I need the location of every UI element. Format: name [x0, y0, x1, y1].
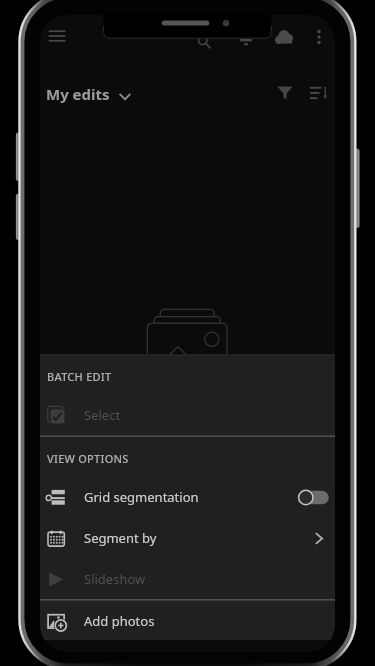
- staticText: Grid segmentation: [84, 488, 199, 506]
- staticText: BATCH EDIT: [47, 369, 112, 384]
- button[interactable]: Add photos: [40, 601, 335, 642]
- button[interactable]: Export: [229, 26, 263, 56]
- staticText: Select: [84, 406, 121, 424]
- button[interactable]: Grid segmentation: [40, 477, 335, 518]
- staticText: VIEW OPTIONS: [47, 451, 129, 466]
- button[interactable]: More options: [304, 20, 334, 54]
- button[interactable]: Sort: [301, 77, 335, 109]
- button[interactable]: Slideshow: [40, 559, 335, 600]
- staticText: Slideshow: [84, 570, 146, 588]
- button[interactable]: My edits: [42, 77, 136, 113]
- staticText: My edits: [46, 84, 110, 104]
- button[interactable]: Segment by: [40, 518, 335, 559]
- staticText: Segment by: [84, 529, 157, 547]
- button[interactable]: Select: [40, 395, 335, 436]
- button[interactable]: Filter: [268, 77, 302, 109]
- button[interactable]: Cloud sync: [267, 22, 301, 52]
- staticText: Add photos: [84, 612, 155, 630]
- button[interactable]: Menu: [40, 16, 77, 56]
- button[interactable]: Search: [187, 27, 221, 57]
